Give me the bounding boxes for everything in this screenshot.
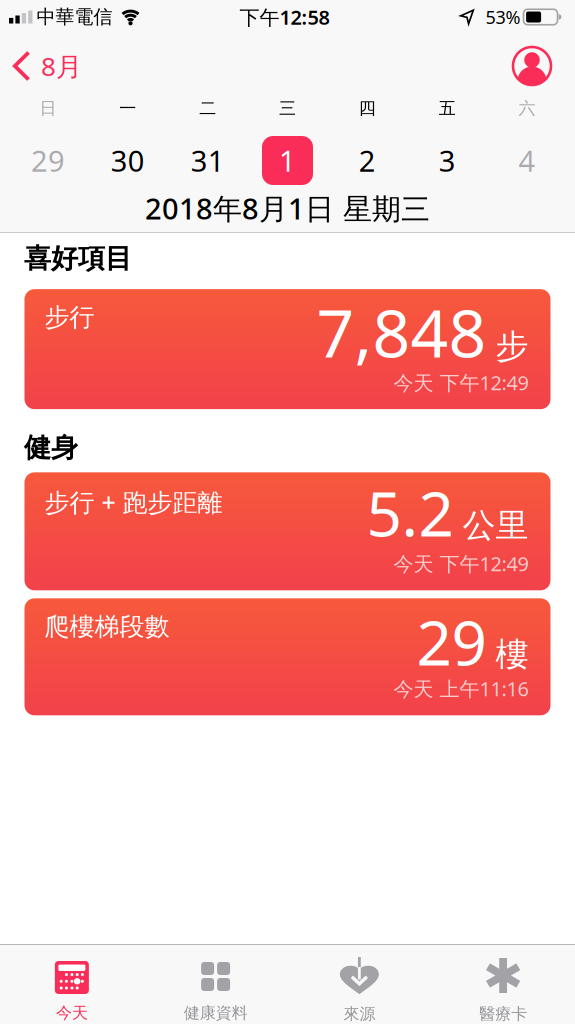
staticText: 二 [199, 98, 216, 119]
staticText: 7,848 [316, 288, 486, 376]
staticText: 樓 [495, 634, 528, 675]
staticText: 29 [31, 141, 65, 180]
button[interactable]: 8月2日 [359, 141, 376, 180]
staticText: 喜好項目 [24, 242, 132, 275]
button[interactable]: 8月4日 [519, 141, 536, 180]
button[interactable]: 健康檔案 [513, 47, 575, 85]
button[interactable]: 步行 + 跑步距離 5.2公里 [24, 472, 550, 590]
staticText: 健身 [24, 431, 78, 464]
button[interactable]: 8月29日 [31, 141, 65, 180]
staticText: 步行 + 跑步距離 [44, 485, 222, 518]
button[interactable]: 步行 7,848步 [24, 289, 550, 409]
staticText: 來源 [343, 1004, 375, 1024]
staticText: 健康資料 [184, 1003, 248, 1023]
staticText: 1 [279, 141, 296, 180]
staticText: 今天 [56, 1003, 88, 1023]
staticText: 29 [416, 600, 486, 683]
staticText: 爬樓梯段數 [44, 611, 169, 642]
staticText: 今天 下午12:49 [393, 550, 528, 577]
staticText: 醫療卡 [479, 1004, 527, 1024]
button[interactable]: 來源 [287, 945, 431, 1024]
button[interactable]: 8月3日 [439, 141, 456, 180]
staticText: 31 [191, 141, 225, 180]
staticText: 8月 [41, 49, 82, 83]
button[interactable]: 8月30日 [111, 141, 145, 180]
button[interactable]: 健康資料 [144, 945, 288, 1023]
staticText: 53% [485, 5, 520, 29]
staticText: 一 [119, 98, 136, 119]
staticText: 2 [359, 141, 376, 180]
staticText: 2018年8月1日 星期三 [145, 189, 430, 227]
button[interactable]: 返回 8月 [0, 49, 82, 83]
staticText: 三 [279, 98, 296, 119]
staticText: 今天 下午12:49 [393, 369, 528, 396]
button[interactable]: 8月1日 [279, 141, 296, 180]
button[interactable]: 今天 [0, 945, 144, 1023]
button[interactable]: 醫療卡 [431, 945, 575, 1024]
staticText: 中華電信 [36, 5, 112, 29]
button[interactable]: 爬樓梯段數 29樓 [24, 598, 550, 715]
staticText: 五 [439, 98, 456, 119]
staticText: 下午12:58 [239, 4, 329, 30]
staticText: 5.2 [366, 471, 453, 554]
staticText: 公里 [462, 505, 528, 546]
staticText: 日 [39, 98, 56, 119]
staticText: 30 [111, 141, 145, 180]
staticText: 六 [519, 98, 536, 119]
staticText: 3 [439, 141, 456, 180]
staticText: 四 [359, 98, 376, 119]
staticText: 步行 [44, 302, 94, 333]
staticText: 4 [519, 141, 536, 180]
button[interactable]: 8月31日 [191, 141, 225, 180]
staticText: 步 [495, 326, 528, 367]
staticText: 今天 上午11:16 [393, 675, 528, 702]
